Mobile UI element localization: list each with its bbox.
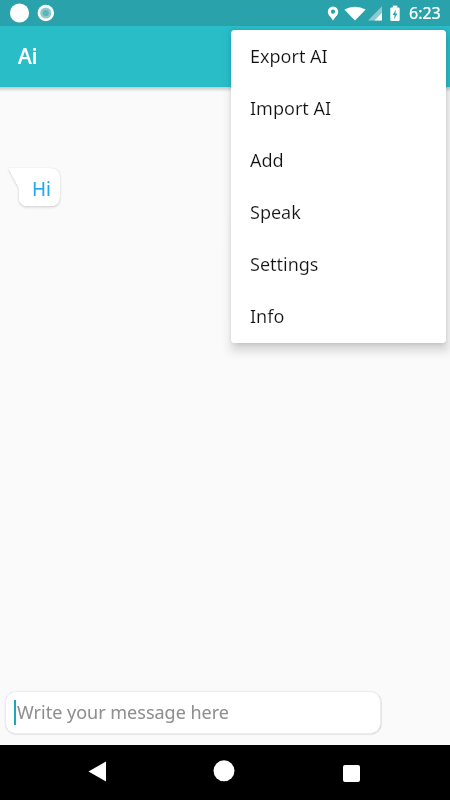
staticText: Add [250, 148, 284, 173]
button[interactable]: Hi [8, 168, 60, 207]
staticText: Speak [250, 200, 301, 225]
button[interactable]: Settings [231, 238, 446, 290]
staticText: Ai [18, 42, 38, 71]
button[interactable]: Speak [231, 186, 446, 238]
staticText: Hi [32, 176, 51, 202]
staticText: Import AI [250, 96, 332, 121]
button[interactable]: Add [231, 134, 446, 186]
staticText: Settings [250, 252, 319, 277]
staticText: Export AI [250, 44, 328, 69]
button[interactable]: Import AI [231, 82, 446, 134]
button[interactable]: Export AI [231, 30, 446, 82]
staticText: Info [250, 304, 285, 329]
staticText: 6:23 [409, 2, 441, 24]
staticText: Write your message here [17, 700, 230, 725]
button[interactable]: Write your message here [5, 691, 381, 734]
button[interactable]: Info [231, 290, 446, 342]
